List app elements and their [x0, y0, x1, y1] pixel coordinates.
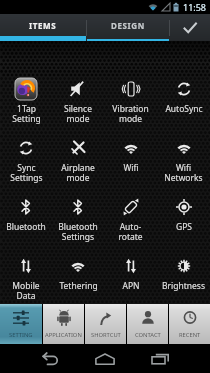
- staticText: RECENT: [179, 331, 201, 339]
- button[interactable]: Bluetooth: [0, 196, 52, 255]
- button[interactable]: Wifi: [104, 137, 157, 196]
- staticText: Airplane mode: [61, 162, 95, 183]
- button[interactable]: Tethering: [52, 255, 104, 304]
- button[interactable]: Vibration mode: [104, 78, 157, 137]
- staticText: Silence mode: [64, 103, 92, 124]
- staticText: Vibration mode: [112, 103, 149, 124]
- staticText: Sync Settings: [10, 162, 43, 183]
- button[interactable]: 1Tap Setting: [0, 78, 52, 137]
- staticText: AutoSync: [165, 103, 203, 115]
- staticText: Auto- rotate: [118, 221, 143, 242]
- button[interactable]: APN: [104, 255, 157, 304]
- button[interactable]: Mobile Data: [0, 255, 52, 304]
- staticText: Brightness: [162, 280, 205, 292]
- button[interactable]: SETTING: [0, 304, 42, 344]
- staticText: DESIGN: [111, 20, 145, 31]
- button[interactable]: DESIGN: [87, 14, 169, 41]
- button[interactable]: AutoSync: [157, 78, 210, 137]
- button[interactable]: [170, 14, 210, 41]
- button[interactable]: Sync Settings: [0, 137, 52, 196]
- staticText: Tethering: [59, 280, 98, 292]
- button[interactable]: GPS: [157, 196, 210, 255]
- button[interactable]: ITEMS: [0, 14, 86, 41]
- staticText: Bluetooth Settings: [58, 221, 98, 242]
- button[interactable]: [95, 349, 115, 369]
- staticText: Wifi Networks: [164, 162, 203, 183]
- button[interactable]: CONTACT: [127, 304, 168, 344]
- button[interactable]: Airplane mode: [52, 137, 104, 196]
- button[interactable]: Auto- rotate: [104, 196, 157, 255]
- button[interactable]: [40, 349, 60, 369]
- staticText: 1Tap Setting: [12, 103, 41, 124]
- staticText: SETTING: [9, 331, 33, 339]
- staticText: SHORTCUT: [91, 331, 121, 339]
- staticText: APPLICATION: [45, 331, 82, 339]
- button[interactable]: Silence mode: [52, 78, 104, 137]
- staticText: ITEMS: [29, 20, 57, 31]
- button[interactable]: APPLICATION: [43, 304, 84, 344]
- button[interactable]: RECENT: [169, 304, 210, 344]
- staticText: Wifi: [123, 162, 139, 174]
- staticText: APN: [122, 280, 140, 292]
- staticText: Bluetooth: [6, 221, 46, 233]
- staticText: CONTACT: [135, 331, 161, 339]
- button[interactable]: Brightness: [157, 255, 210, 304]
- button[interactable]: Bluetooth Settings: [52, 196, 104, 255]
- staticText: Mobile Data: [12, 280, 40, 301]
- button[interactable]: [150, 349, 170, 369]
- button[interactable]: Wifi Networks: [157, 137, 210, 196]
- staticText: 11:58: [183, 1, 207, 13]
- staticText: GPS: [176, 221, 192, 233]
- button[interactable]: SHORTCUT: [85, 304, 126, 344]
